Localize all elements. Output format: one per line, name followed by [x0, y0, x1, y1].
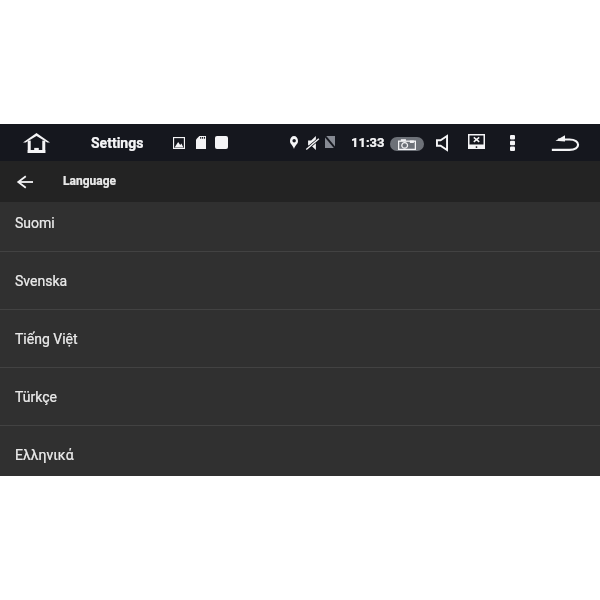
staticText: Language — [63, 174, 117, 188]
button[interactable]: Ελληνικά — [0, 426, 600, 476]
button[interactable]: Navigate up — [5, 161, 45, 202]
button[interactable]: Türkçe — [0, 368, 600, 426]
staticText: Suomi — [15, 215, 55, 231]
staticText: Türkçe — [15, 389, 57, 405]
staticText: Settings — [91, 135, 144, 151]
button[interactable]: Svenska — [0, 252, 600, 310]
button[interactable]: Home — [12, 124, 60, 161]
staticText: Tiếng Việt — [15, 331, 78, 347]
staticText: Svenska — [15, 273, 68, 289]
button[interactable]: Tiếng Việt — [0, 310, 600, 368]
button[interactable]: Back — [545, 124, 585, 161]
staticText: Ελληνικά — [15, 447, 74, 463]
button[interactable]: Screenshot — [390, 137, 424, 151]
button[interactable]: More options — [500, 124, 524, 161]
staticText: 11:33 — [351, 135, 385, 150]
button[interactable]: Suomi — [0, 202, 600, 252]
